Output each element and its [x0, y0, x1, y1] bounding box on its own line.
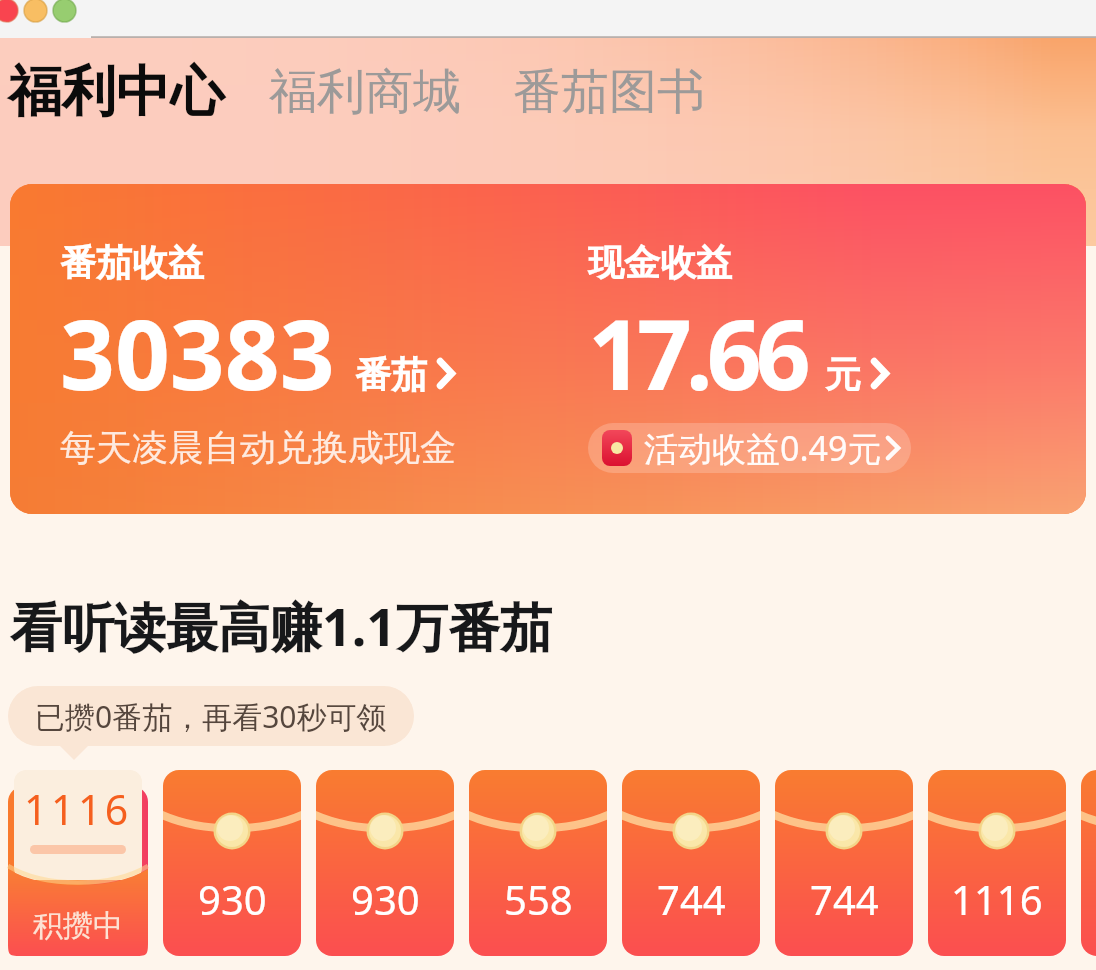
- button[interactable]: 番茄收益: [10, 184, 1086, 514]
- button[interactable]: 930: [1081, 770, 1096, 956]
- button[interactable]: 福利商城: [269, 62, 461, 122]
- staticText: 1116: [951, 872, 1043, 926]
- staticText: 番茄: [355, 352, 427, 397]
- button[interactable]: 活动收益0.49元: [588, 423, 911, 473]
- staticText: 现金收益: [588, 240, 732, 285]
- button[interactable]: 1116: [928, 770, 1066, 956]
- button[interactable]: 744: [622, 770, 760, 956]
- button[interactable]: 930: [316, 770, 454, 956]
- button[interactable]: 已攒0番茄，再看30秒可领: [8, 686, 414, 746]
- staticText: 17.66: [588, 287, 805, 418]
- staticText: 每天凌晨自动兑换成现金: [60, 425, 456, 470]
- button[interactable]: 558: [469, 770, 607, 956]
- staticText: 福利商城: [269, 62, 461, 122]
- staticText: 番茄图书: [513, 62, 705, 122]
- staticText: 930: [351, 872, 420, 926]
- staticText: 积攒中: [33, 907, 123, 945]
- button[interactable]: 1116: [8, 770, 148, 956]
- staticText: 番茄收益: [60, 240, 204, 285]
- button[interactable]: 744: [775, 770, 913, 956]
- staticText: 744: [810, 872, 879, 926]
- staticText: 已攒0番茄，再看30秒可领: [35, 696, 387, 737]
- staticText: 558: [504, 872, 573, 926]
- staticText: 744: [657, 872, 726, 926]
- staticText: 元: [825, 352, 861, 397]
- staticText: 30383: [60, 287, 335, 418]
- staticText: 1116: [24, 781, 132, 837]
- button[interactable]: 930: [163, 770, 301, 956]
- staticText: 活动收益0.49元: [644, 425, 882, 471]
- staticText: 看听读最高赚1.1万番茄: [10, 590, 553, 661]
- staticText: 930: [198, 872, 267, 926]
- button[interactable]: 福利中心: [8, 58, 224, 126]
- staticText: 福利中心: [8, 58, 224, 126]
- button[interactable]: 番茄图书: [513, 62, 705, 122]
